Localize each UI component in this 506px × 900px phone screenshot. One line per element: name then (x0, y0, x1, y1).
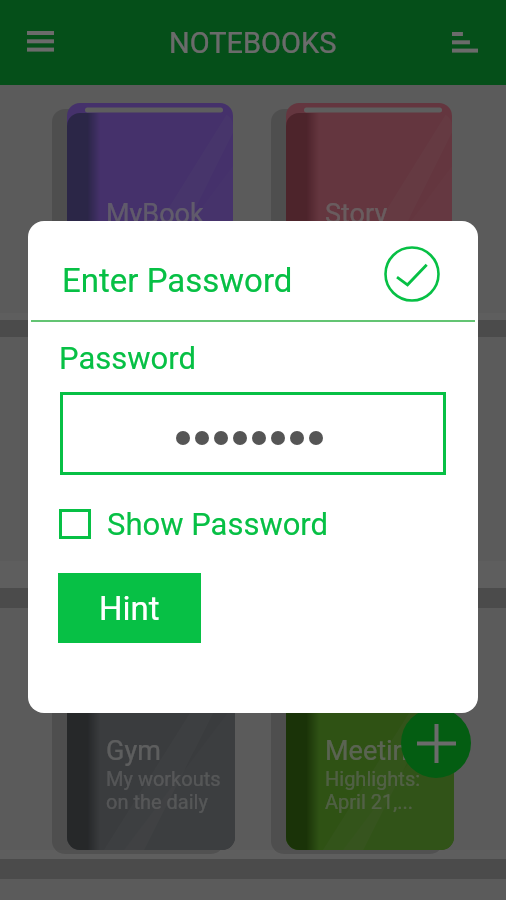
staticText: Notes (106, 446, 178, 478)
staticText: April 21,... (325, 790, 413, 813)
staticText: Show Password (107, 506, 329, 542)
button[interactable]: Sort (433, 21, 498, 65)
button[interactable]: Menu (8, 21, 73, 65)
staticText: NOTEBOOKS (169, 26, 337, 60)
button[interactable]: Confirm password (383, 245, 441, 303)
button[interactable]: Meeting (286, 640, 454, 850)
button[interactable]: Add notebook (401, 708, 471, 778)
staticText: My workouts (106, 767, 221, 790)
staticText: Meeting (325, 735, 423, 767)
staticText: Highlights: (325, 767, 421, 790)
button[interactable]: Show Password (59, 506, 329, 542)
staticText: Password (59, 340, 196, 376)
staticText: Enter Password (62, 261, 293, 300)
staticText: Hint (99, 589, 160, 628)
button[interactable]: MyBook (67, 103, 233, 313)
button[interactable]: Gym (67, 640, 235, 850)
staticText: Story (325, 198, 388, 230)
button[interactable]: Ideas (286, 351, 452, 561)
button[interactable]: Story (286, 103, 452, 313)
staticText: Gym (106, 735, 161, 767)
staticText: Ideas (325, 446, 391, 478)
staticText: on the daily (106, 790, 208, 813)
button[interactable] (60, 392, 446, 475)
button[interactable]: Notes (67, 351, 233, 561)
button[interactable]: Hint (58, 573, 201, 643)
staticText: MyBook (106, 198, 204, 230)
